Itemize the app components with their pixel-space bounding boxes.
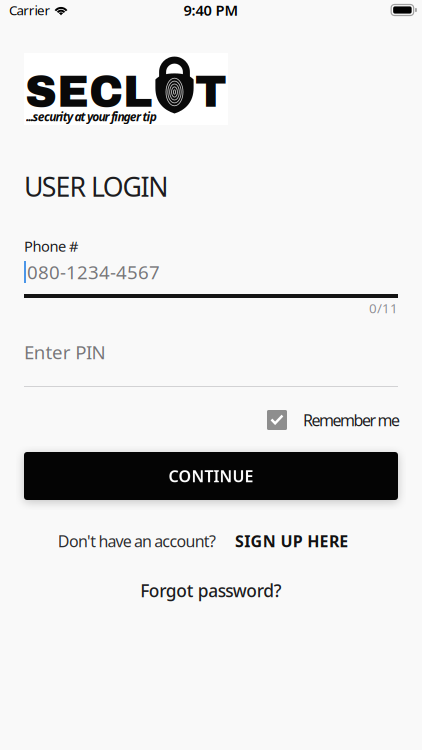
staticText: Don't have an account? [58, 530, 216, 552]
staticText: CONTINUE [168, 465, 253, 487]
staticText: SECL [25, 68, 152, 116]
button[interactable]: Forgot password? [0, 582, 422, 599]
staticText: 9:40 PM [183, 0, 238, 20]
staticText: Phone # [24, 236, 78, 256]
button[interactable]: CONTINUE [24, 452, 398, 500]
staticText: Carrier [9, 1, 51, 19]
staticText: Remember me [303, 409, 400, 431]
staticText: USER LOGIN [24, 169, 168, 204]
button[interactable]: Remember me [267, 410, 400, 430]
staticText: SIGN UP HERE [235, 530, 348, 552]
staticText: T [195, 68, 227, 116]
staticText: 080-1234-4567 [27, 260, 160, 284]
staticText: Forgot password? [140, 579, 282, 602]
staticText: 0/11 [369, 299, 398, 317]
button[interactable]: Don't have an account? [0, 534, 422, 548]
staticText: Enter PIN [24, 340, 106, 364]
staticText: ...security at your finger tip [26, 108, 157, 124]
